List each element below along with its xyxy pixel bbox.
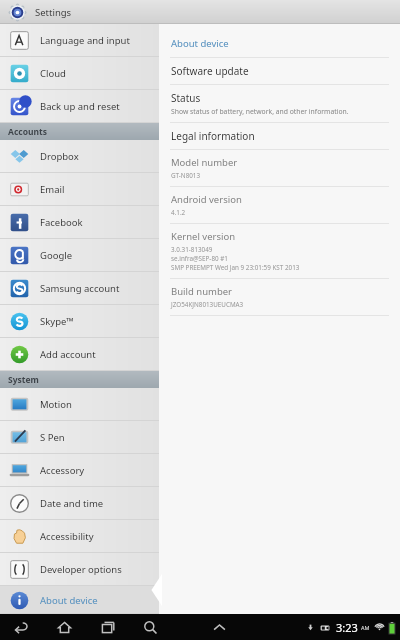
button[interactable]: Build number [159,279,400,315]
staticText: se.infra@SEP-80 #1 [171,254,228,263]
button[interactable]: Software update [159,58,400,84]
button[interactable]: Skype™ [0,305,159,338]
button[interactable]: Show menu [208,616,230,638]
staticText: 3:23 [336,620,358,635]
staticText: Legal information [171,129,255,143]
button[interactable]: Accessory [0,454,159,487]
staticText: 3.0.31-813049 [171,245,213,254]
button[interactable]: Language and input [0,24,159,57]
button[interactable]: Email [0,173,159,206]
button[interactable]: Android version [159,187,400,223]
button[interactable]: Status [159,85,400,122]
staticText: S Pen [40,431,65,444]
staticText: Settings [35,6,72,19]
button[interactable]: Search [139,616,161,638]
staticText: Accessibility [40,530,94,543]
button[interactable]: S Pen [0,421,159,454]
button[interactable]: Developer options [0,553,159,586]
staticText: AM [361,624,370,631]
staticText: About device [171,37,229,50]
staticText: Accounts [8,126,47,138]
button[interactable]: Samsung account [0,272,159,305]
staticText: JZO54KJN8013UEUCMA3 [171,300,244,309]
button[interactable]: Back up and reset [0,90,159,123]
staticText: Accessory [40,464,85,477]
button[interactable]: Add account [0,338,159,371]
staticText: Samsung account [40,282,120,295]
staticText: Show status of battery, network, and oth… [171,107,349,116]
staticText: Status [171,91,201,105]
staticText: GT-N8013 [171,171,201,180]
button[interactable]: Recent apps [96,616,118,638]
button[interactable]: Date and time [0,487,159,520]
staticText: Build number [171,285,233,298]
button[interactable]: Back [10,616,32,638]
button[interactable]: Facebook [0,206,159,239]
staticText: 4.1.2 [171,208,186,217]
staticText: Motion [40,398,72,411]
staticText: SMP PREEMPT Wed Jan 9 23:01:59 KST 2013 [171,263,300,272]
button[interactable]: Model number [159,150,400,186]
staticText: Developer options [40,563,122,576]
staticText: Add account [40,348,96,361]
button[interactable]: Accessibility [0,520,159,553]
button[interactable]: Google [0,239,159,272]
staticText: Cloud [40,67,66,80]
staticText: Facebook [40,216,83,229]
button[interactable]: Motion [0,388,159,421]
staticText: System [8,374,39,386]
staticText: Skype™ [40,315,74,328]
staticText: Date and time [40,497,104,510]
button[interactable]: Settings [9,4,26,21]
staticText: Google [40,249,73,262]
button[interactable]: About device [0,586,159,614]
staticText: Back up and reset [40,100,120,113]
staticText: Dropbox [40,150,79,163]
staticText: Kernel version [171,230,236,243]
button[interactable]: Kernel version [159,224,400,278]
staticText: Android version [171,193,242,206]
staticText: Language and input [40,34,130,47]
button[interactable]: Cloud [0,57,159,90]
staticText: Email [40,183,65,196]
button[interactable]: Legal information [159,123,400,149]
staticText: About device [40,594,98,607]
staticText: Model number [171,156,238,169]
button[interactable]: Home [53,616,75,638]
button[interactable]: Dropbox [0,140,159,173]
staticText: Software update [171,64,249,78]
